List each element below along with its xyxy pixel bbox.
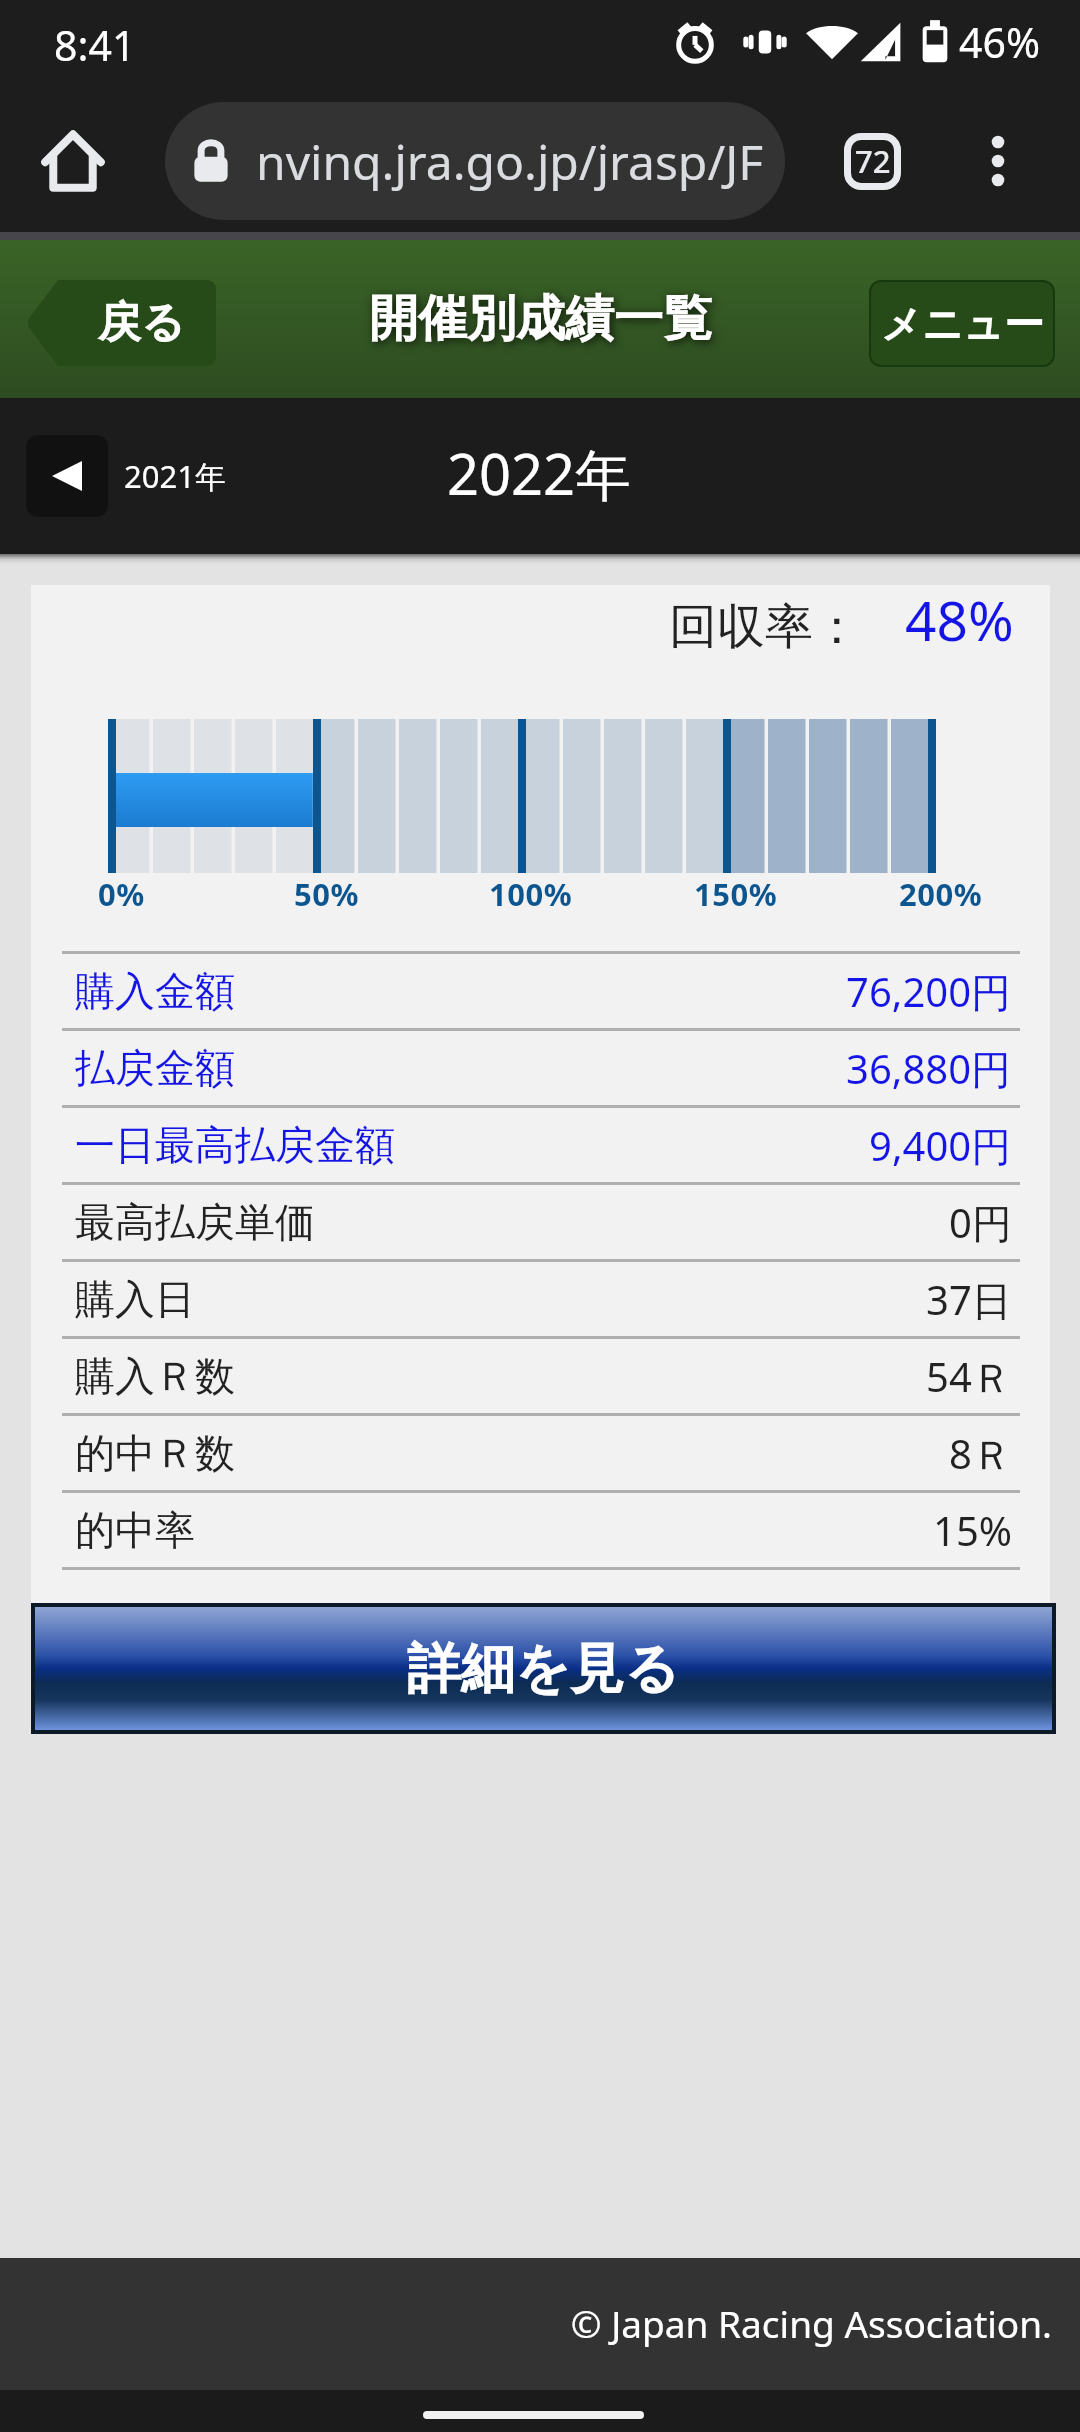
button[interactable]: 的中Ｒ数 [31, 1416, 1050, 1490]
staticText: 200% [899, 873, 983, 915]
button[interactable]: 最高払戻単価 [31, 1185, 1050, 1259]
staticText: 購入金額 [75, 966, 235, 1016]
button[interactable]: Home [29, 117, 117, 205]
staticText: 37日 [926, 1272, 1012, 1327]
staticText: 8:41 [54, 17, 136, 73]
staticText: © Japan Racing Association. [570, 2298, 1052, 2348]
button[interactable]: メニュー [869, 280, 1055, 367]
staticText: 150% [694, 873, 778, 915]
staticText: 最高払戻単価 [75, 1197, 315, 1247]
staticText: 購入日 [75, 1274, 195, 1324]
button[interactable]: nvinq.jra.go.jp/jrasp/JF [165, 102, 785, 220]
button[interactable]: 2021年 [26, 435, 226, 517]
staticText: nvinq.jra.go.jp/jrasp/JF [256, 129, 764, 194]
button[interactable]: 購入Ｒ数 [31, 1339, 1050, 1413]
staticText: 詳細を見る [407, 1635, 680, 1703]
button[interactable]: More options [954, 117, 1042, 205]
staticText: 46% [959, 14, 1040, 70]
staticText: 48% [905, 582, 1014, 657]
button[interactable]: 購入金額 [31, 954, 1050, 1028]
staticText: 0% [98, 873, 145, 915]
button[interactable]: 払戻金額 [31, 1031, 1050, 1105]
staticText: 0円 [949, 1195, 1012, 1250]
staticText: 36,880円 [846, 1041, 1012, 1096]
staticText: 払戻金額 [75, 1043, 235, 1093]
button[interactable]: 詳細を見る [35, 1607, 1052, 1730]
button[interactable]: 一日最高払戻金額 [31, 1108, 1050, 1182]
staticText: 回収率： [669, 597, 861, 657]
staticText: 15% [933, 1503, 1012, 1557]
staticText: 72 [855, 140, 891, 182]
button[interactable]: 的中率 [31, 1493, 1050, 1567]
staticText: 54Ｒ [926, 1349, 1012, 1404]
button[interactable]: Tabs [828, 117, 916, 205]
staticText: 一日最高払戻金額 [75, 1120, 395, 1170]
staticText: 76,200円 [846, 964, 1012, 1019]
staticText: 9,400円 [869, 1118, 1012, 1173]
staticText: 購入Ｒ数 [75, 1351, 235, 1401]
staticText: 8Ｒ [949, 1426, 1012, 1481]
staticText: 的中率 [75, 1505, 195, 1555]
staticText: 開催別成績一覧 [369, 288, 712, 350]
staticText: 戻る [98, 296, 186, 350]
staticText: メニュー [881, 299, 1044, 349]
button[interactable]: 戻る [26, 280, 216, 366]
staticText: 50% [294, 873, 359, 915]
staticText: 2021年 [124, 455, 226, 497]
button[interactable]: 購入日 [31, 1262, 1050, 1336]
staticText: 2022年 [447, 435, 632, 511]
staticText: 的中Ｒ数 [75, 1428, 235, 1478]
staticText: 100% [489, 873, 573, 915]
